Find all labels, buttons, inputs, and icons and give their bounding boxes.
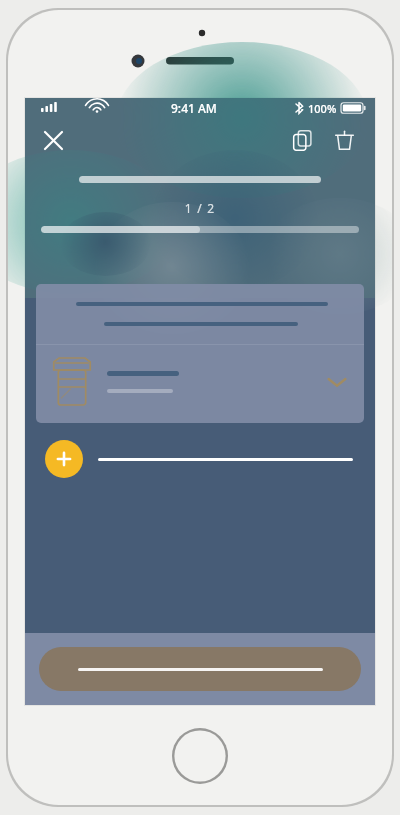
staticText: 100%: [308, 101, 337, 116]
button[interactable]: [39, 647, 361, 691]
staticText: 9:41 AM: [171, 100, 217, 116]
other: Expand: [322, 367, 352, 397]
button[interactable]: Container: [36, 284, 364, 423]
other: Container: [53, 357, 91, 407]
button[interactable]: Add: [45, 433, 353, 485]
button[interactable]: Close: [33, 120, 73, 160]
button[interactable]: Duplicate: [281, 119, 323, 161]
button[interactable]: Delete: [323, 119, 365, 161]
staticText: 1 / 2: [25, 200, 375, 216]
button[interactable]: Container: [36, 345, 364, 419]
other: Add: [45, 440, 83, 478]
